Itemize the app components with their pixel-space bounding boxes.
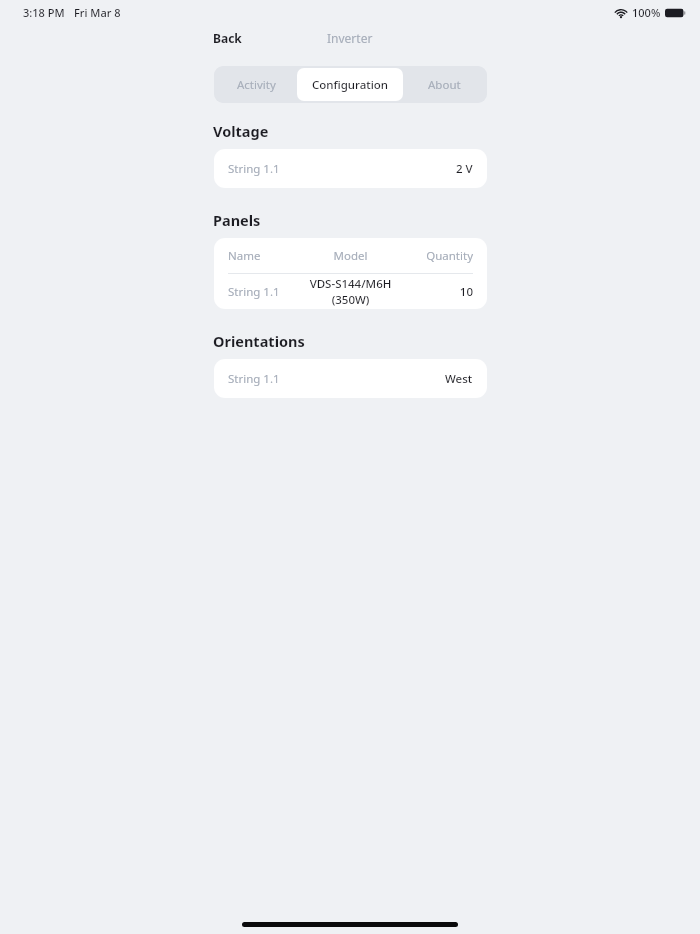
- staticText: String 1.1: [228, 284, 297, 300]
- staticText: Name: [228, 248, 297, 264]
- button[interactable]: About: [403, 68, 485, 101]
- staticText: VDS-S144/M6H (350W): [297, 276, 404, 308]
- button[interactable]: Back: [211, 26, 244, 50]
- button[interactable]: String 1.1: [214, 149, 487, 188]
- staticText: Inverter: [327, 30, 373, 46]
- staticText: Model: [297, 248, 404, 264]
- staticText: 10: [404, 284, 473, 300]
- staticText: Panels: [213, 210, 261, 230]
- staticText: Voltage: [213, 121, 269, 141]
- staticText: Back: [213, 30, 242, 46]
- staticText: 3:18 PM: [23, 5, 65, 20]
- staticText: String 1.1: [228, 161, 280, 177]
- staticText: 100%: [632, 5, 661, 20]
- staticText: West: [445, 371, 473, 387]
- other: Wi-Fi: [614, 8, 628, 18]
- other: Battery 100 percent: [665, 8, 686, 18]
- button[interactable]: String 1.1: [214, 359, 487, 398]
- staticText: Activity: [237, 77, 276, 93]
- staticText: Quantity: [404, 248, 473, 264]
- button[interactable]: String 1.1: [214, 274, 487, 309]
- staticText: Configuration: [312, 77, 389, 93]
- staticText: Fri Mar 8: [74, 5, 121, 20]
- button[interactable]: Configuration: [297, 68, 403, 101]
- button[interactable]: Activity: [216, 68, 297, 101]
- staticText: Orientations: [213, 331, 305, 351]
- staticText: 2 V: [456, 161, 473, 177]
- staticText: About: [428, 77, 461, 93]
- staticText: String 1.1: [228, 371, 280, 387]
